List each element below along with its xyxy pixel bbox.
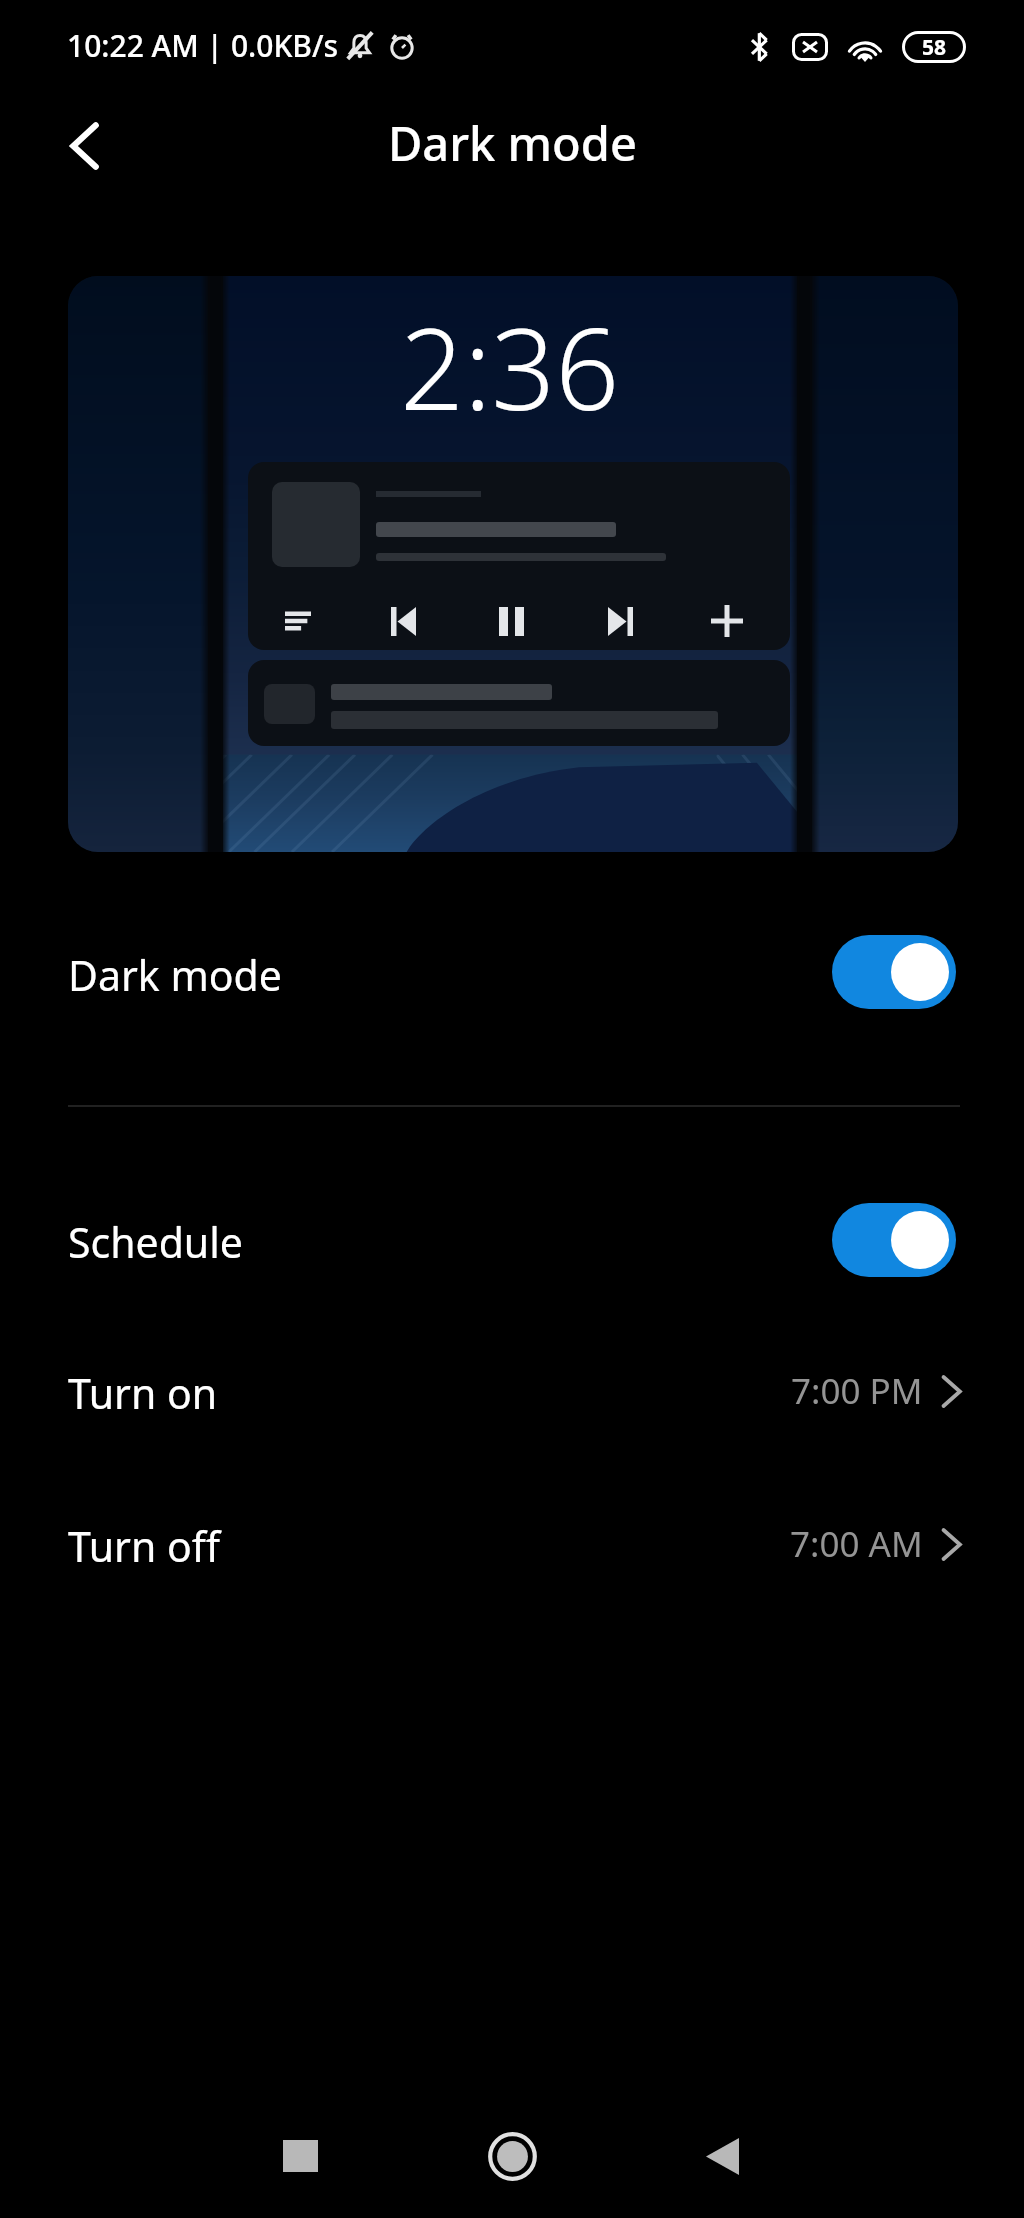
- button[interactable]: Schedule switch, on: [832, 1203, 956, 1277]
- staticText: 2:36: [400, 290, 620, 443]
- button[interactable]: Back: [44, 106, 124, 186]
- button[interactable]: Back: [664, 2098, 780, 2214]
- button[interactable]: Home: [454, 2098, 570, 2214]
- button[interactable]: Recents: [242, 2098, 358, 2214]
- button[interactable]: Dark mode: [0, 934, 1024, 1012]
- button[interactable]: Dark mode preview: [68, 276, 958, 852]
- button[interactable]: Dark mode switch, on: [832, 935, 956, 1009]
- staticText: Turn on: [68, 1365, 218, 1421]
- button[interactable]: Turn off: [0, 1505, 1024, 1583]
- button[interactable]: Turn on: [0, 1352, 1024, 1430]
- staticText: Turn off: [68, 1518, 221, 1574]
- staticText: 10:22 AM | 0.0KB/s: [67, 25, 339, 66]
- staticText: 7:00 PM: [791, 1367, 923, 1415]
- button[interactable]: Schedule: [0, 1201, 1024, 1279]
- staticText: 7:00 AM: [790, 1520, 923, 1568]
- staticText: Dark mode: [388, 111, 637, 175]
- staticText: Dark mode: [68, 947, 282, 1003]
- staticText: Schedule: [68, 1214, 243, 1270]
- staticText: 58: [922, 33, 947, 62]
